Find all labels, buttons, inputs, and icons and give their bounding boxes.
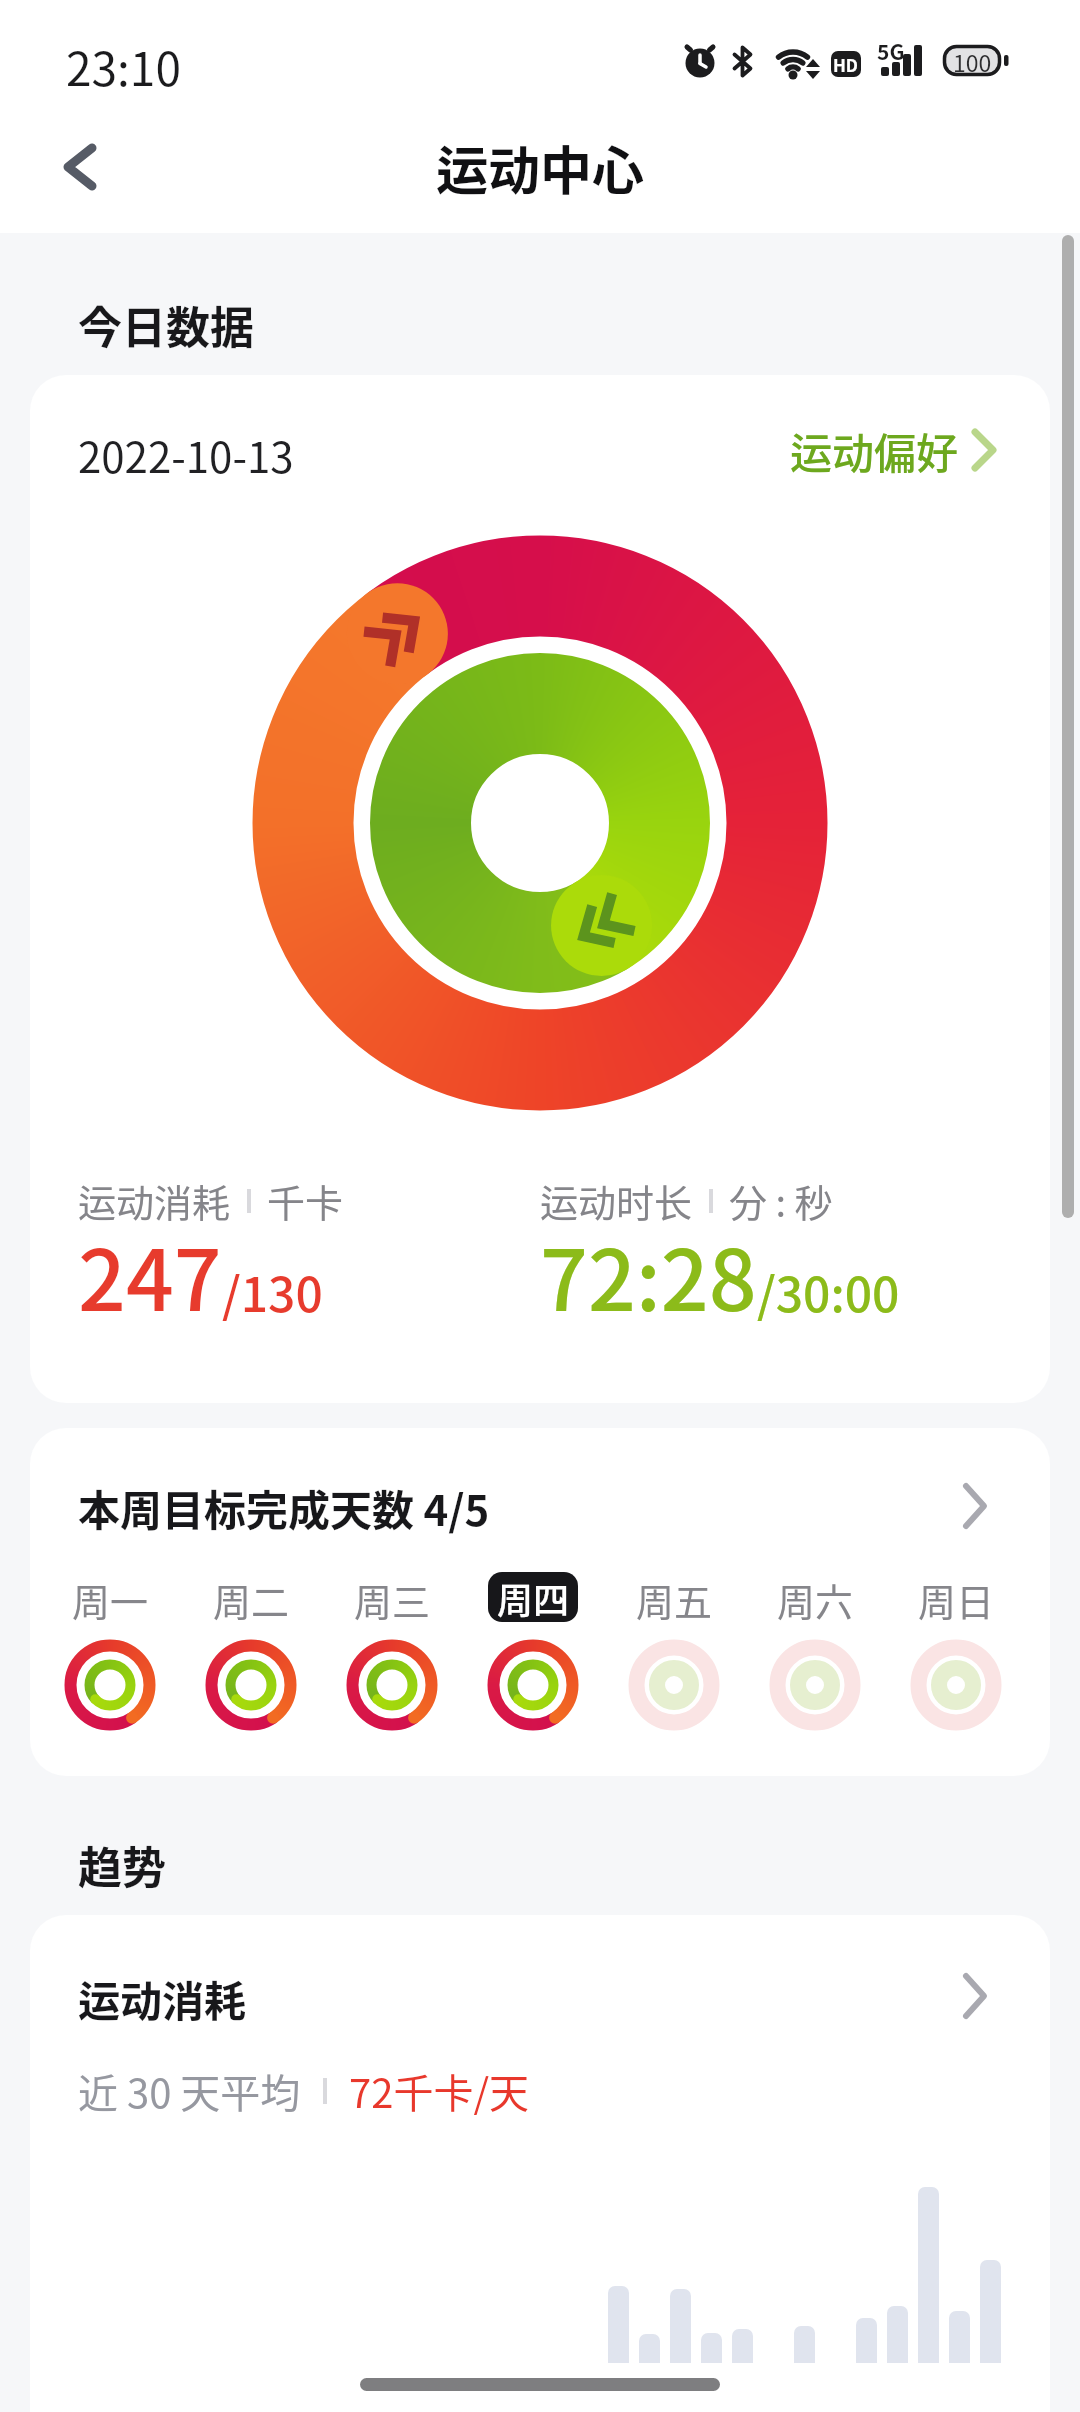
button[interactable] [30,1915,1050,2412]
staticText: HD [833,52,859,77]
staticText: 周二 [213,1572,290,1622]
staticText: 运动消耗 [78,1968,247,2029]
staticText: 运动消耗 [78,1173,231,1228]
staticText: 运动偏好 [790,420,959,481]
staticText: /30:00 [757,1256,900,1326]
staticText: 5G [877,36,905,66]
staticText: /130 [222,1256,323,1326]
staticText: 近 30 天平均 [78,2062,301,2120]
staticText: 100 [953,45,992,76]
button[interactable] [30,1428,1050,1776]
staticText: 周三 [354,1572,431,1622]
staticText: 72千卡/天 [349,2062,530,2120]
staticText: 周四 [497,1572,570,1622]
staticText: 周五 [636,1572,713,1622]
staticText: 趋势 [78,1833,166,1897]
staticText: 23:10 [66,33,181,100]
button[interactable]: 运动偏好 [760,414,1005,486]
staticText: 2022-10-13 [78,424,294,485]
staticText: 千卡 [267,1173,344,1228]
button[interactable] [30,120,130,220]
staticText: 运动中心 [436,130,645,205]
staticText: 周一 [72,1572,149,1622]
staticText: 分 : 秒 [729,1173,833,1228]
staticText: 247 [78,1214,222,1336]
staticText: 本周目标完成天数 4/5 [78,1477,490,1538]
staticText: 周日 [918,1572,995,1622]
staticText: 72:28 [540,1214,757,1336]
staticText: 运动时长 [540,1173,693,1228]
staticText: 今日数据 [78,293,254,357]
staticText: 周六 [777,1572,854,1622]
